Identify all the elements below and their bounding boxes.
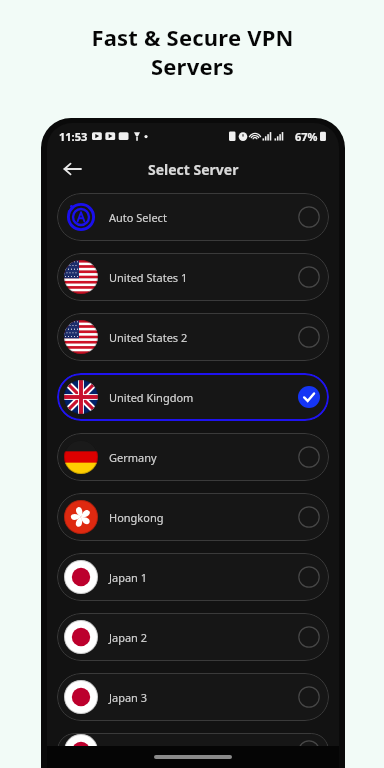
button[interactable]: United States 2 bbox=[57, 313, 329, 361]
staticText: 67% bbox=[295, 129, 318, 144]
staticText: United Kingdom bbox=[109, 390, 194, 405]
button[interactable]: Auto Select bbox=[57, 193, 329, 241]
button[interactable]: United States 1 bbox=[57, 253, 329, 301]
button[interactable]: United Kingdom bbox=[57, 373, 329, 421]
staticText: Select Server bbox=[148, 160, 239, 179]
button[interactable]: Japan 4 bbox=[57, 733, 329, 768]
staticText: United States 2 bbox=[109, 330, 188, 345]
button[interactable]: Back bbox=[55, 152, 89, 186]
staticText: Fast & Secure VPN Servers bbox=[91, 22, 294, 81]
staticText: Auto Select bbox=[109, 210, 167, 225]
button[interactable]: Japan 1 bbox=[57, 553, 329, 601]
staticText: 11:53 bbox=[59, 129, 88, 144]
button[interactable]: Hongkong bbox=[57, 493, 329, 541]
staticText: United States 1 bbox=[109, 270, 188, 285]
staticText: Germany bbox=[109, 450, 157, 465]
staticText: Japan 2 bbox=[109, 630, 148, 645]
staticText: Japan 4 bbox=[109, 743, 148, 758]
button[interactable]: Japan 3 bbox=[57, 673, 329, 721]
staticText: Japan 3 bbox=[109, 690, 148, 705]
button[interactable]: Japan 2 bbox=[57, 613, 329, 661]
button[interactable]: Germany bbox=[57, 433, 329, 481]
staticText: Hongkong bbox=[109, 510, 164, 525]
staticText: Japan 1 bbox=[109, 570, 148, 585]
